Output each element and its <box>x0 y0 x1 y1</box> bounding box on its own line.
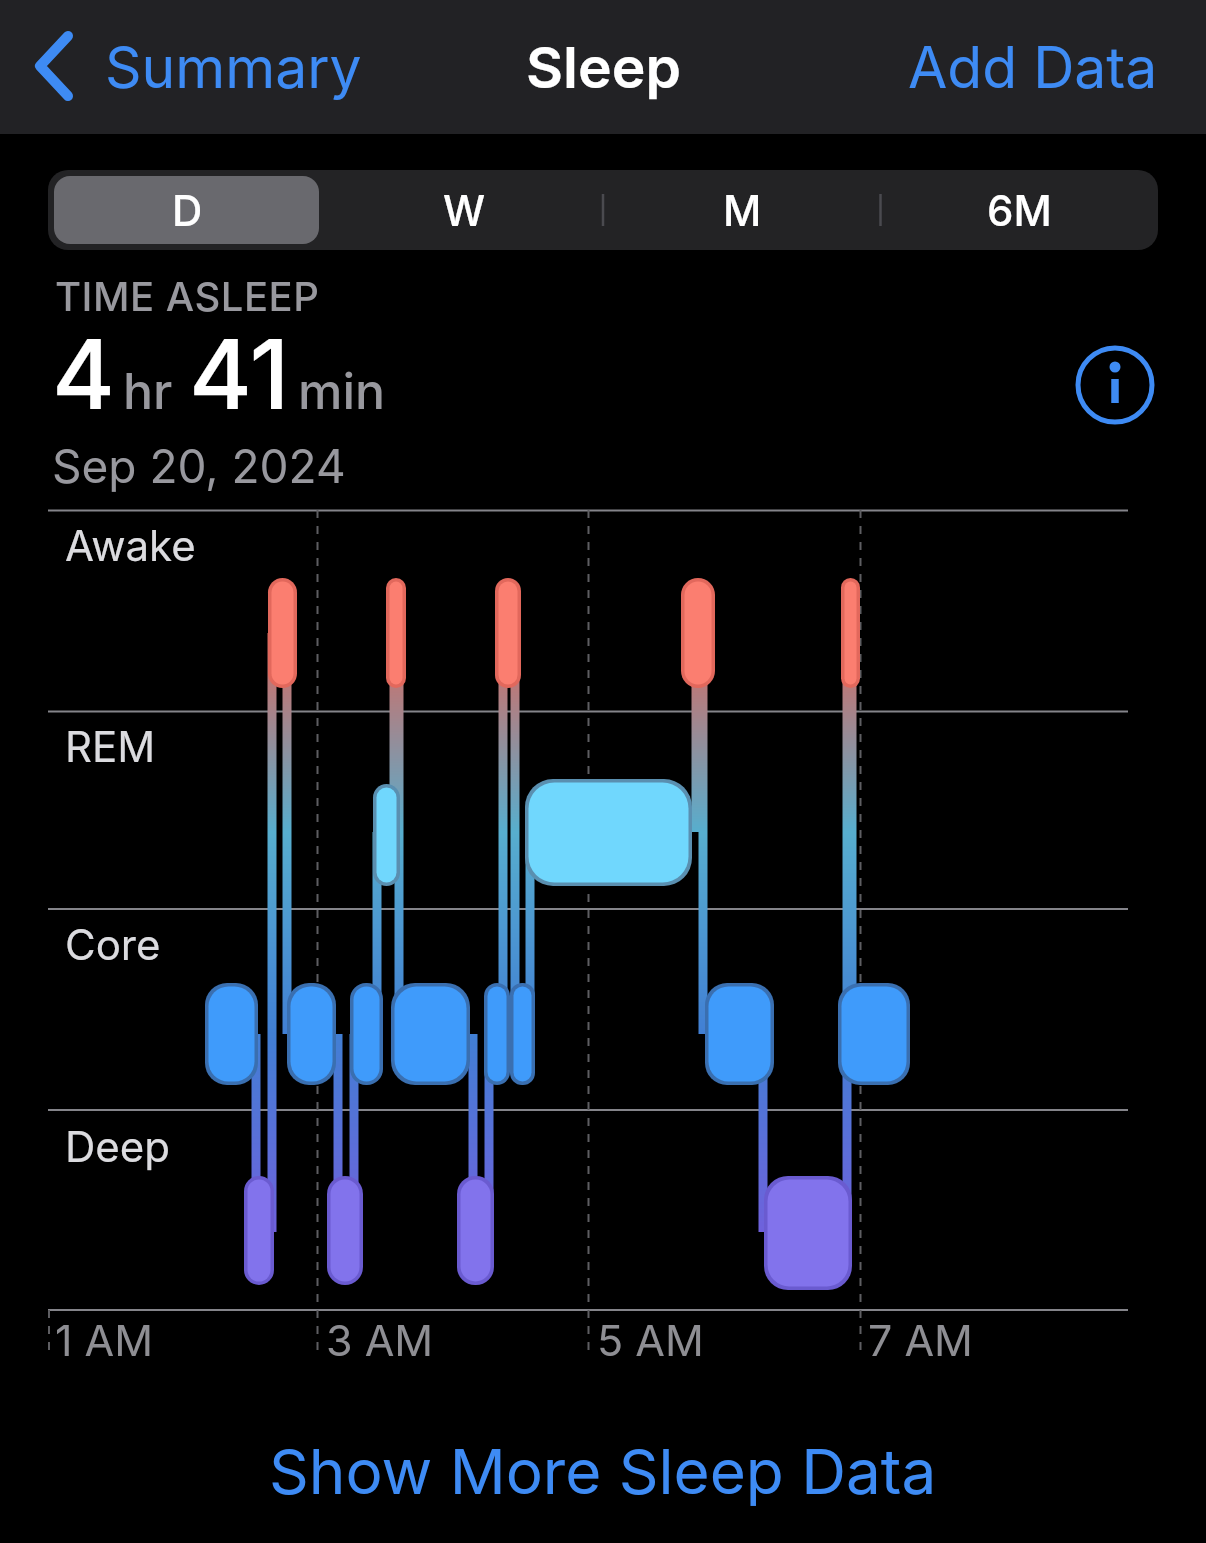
button[interactable]: W <box>395 170 533 250</box>
staticText: 5 AM <box>597 1314 704 1366</box>
button[interactable]: M <box>673 170 811 250</box>
staticText: 1 AM <box>55 1314 154 1366</box>
staticText: Awake <box>65 520 196 571</box>
staticText: Sep 20, 2024 <box>52 438 346 494</box>
staticText: 3 AM <box>326 1314 434 1366</box>
staticText: 6M <box>987 185 1052 236</box>
staticText: TIME ASLEEP <box>55 272 320 320</box>
staticText: Add Data <box>908 33 1158 102</box>
button[interactable] <box>54 176 319 244</box>
button[interactable]: Summary <box>34 32 362 102</box>
button[interactable]: Show More Sleep Data <box>269 1434 937 1509</box>
button[interactable]: D <box>118 170 256 250</box>
staticText: Summary <box>105 33 362 102</box>
staticText: Sleep <box>526 33 681 102</box>
staticText: REM <box>65 721 156 772</box>
staticText: hr <box>123 361 173 421</box>
staticText: 4 <box>52 316 115 432</box>
staticText: 41 <box>189 316 290 432</box>
staticText: W <box>443 185 486 236</box>
staticText: M <box>723 185 762 236</box>
staticText: 7 AM <box>868 1314 973 1366</box>
staticText: Core <box>65 919 161 970</box>
button[interactable]: 6M <box>950 170 1088 250</box>
button[interactable] <box>1071 341 1159 429</box>
staticText: min <box>298 361 386 421</box>
button[interactable]: Add Data <box>908 33 1158 102</box>
staticText: D <box>172 185 203 236</box>
staticText: Deep <box>65 1121 170 1172</box>
